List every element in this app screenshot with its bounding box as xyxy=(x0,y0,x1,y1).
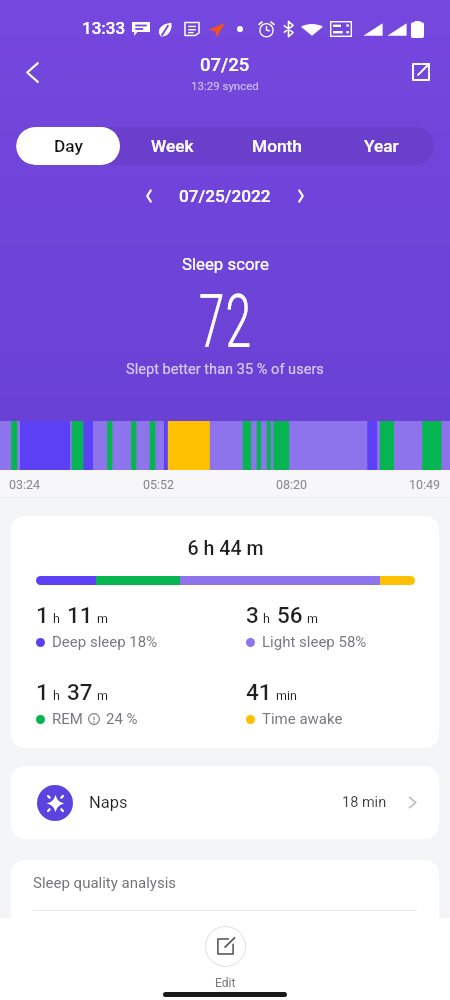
staticText: 13:33 xyxy=(82,18,126,38)
staticText: 13:29 synced xyxy=(191,79,259,92)
staticText: Time awake xyxy=(262,710,343,728)
button[interactable]: Next day xyxy=(286,181,316,211)
staticText: Naps xyxy=(89,793,128,812)
staticText: 41 xyxy=(246,679,272,705)
staticText: Sleep quality analysis xyxy=(33,874,177,892)
staticText: 10:49 xyxy=(409,477,441,492)
staticText: Edit xyxy=(215,976,236,990)
staticText: m xyxy=(97,688,108,703)
staticText: 08:20 xyxy=(276,477,308,492)
staticText: 07/25/2022 xyxy=(179,186,271,206)
button[interactable]: Year xyxy=(329,127,434,165)
staticText: 72 xyxy=(198,278,252,365)
button[interactable]: Naps xyxy=(11,766,439,839)
staticText: Deep sleep 18% xyxy=(52,633,158,651)
button[interactable]: Open in new window xyxy=(402,54,440,92)
staticText: REM xyxy=(52,710,83,728)
staticText: Year xyxy=(364,136,399,156)
staticText: Week xyxy=(151,136,194,156)
staticText: h xyxy=(53,611,60,626)
button[interactable]: Week xyxy=(120,127,224,165)
staticText: 37 xyxy=(67,679,93,705)
staticText: Light sleep 58% xyxy=(262,633,367,651)
staticText: 3 xyxy=(246,602,259,628)
staticText: m xyxy=(307,611,318,626)
button[interactable]: Month xyxy=(224,127,329,165)
staticText: m xyxy=(97,611,108,626)
staticText: 1 xyxy=(36,679,49,705)
staticText: 56 xyxy=(277,602,303,628)
staticText: 11 xyxy=(67,602,93,628)
staticText: 03:24 xyxy=(9,477,41,492)
staticText: Day xyxy=(54,136,83,156)
button[interactable]: Day xyxy=(16,127,120,165)
staticText: Month xyxy=(252,136,302,156)
button[interactable]: Previous day xyxy=(134,181,164,211)
button[interactable]: Back xyxy=(12,50,52,90)
staticText: 24 % xyxy=(106,710,138,728)
staticText: h xyxy=(263,611,270,626)
staticText: Slept better than 35 % of users xyxy=(126,360,324,377)
staticText: 1 xyxy=(36,602,49,628)
button[interactable]: Edit xyxy=(183,926,268,990)
staticText: Sleep score xyxy=(182,254,269,274)
staticText: min xyxy=(276,688,297,703)
staticText: 07/25 xyxy=(200,54,250,76)
staticText: 18 min xyxy=(342,794,387,811)
staticText: 05:52 xyxy=(143,477,175,492)
staticText: h xyxy=(53,688,60,703)
staticText: 6 h 44 m xyxy=(36,537,415,560)
